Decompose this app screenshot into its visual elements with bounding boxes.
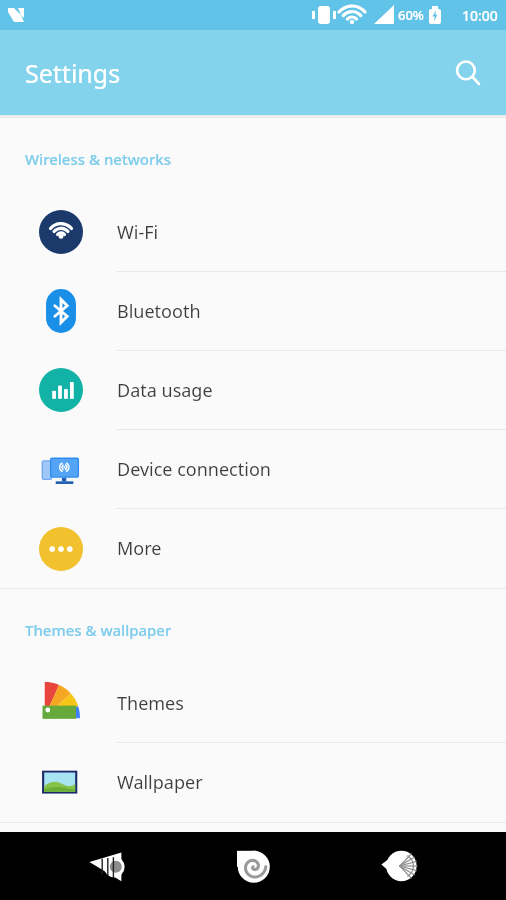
staticText: Themes	[117, 691, 184, 716]
staticText: Device connection	[117, 457, 271, 482]
button[interactable]: Device connection	[0, 430, 506, 509]
staticText: Wireless & networks	[25, 149, 171, 169]
button[interactable]: Bluetooth	[0, 272, 506, 351]
button[interactable]: Recents	[360, 832, 438, 900]
button[interactable]: Wi-Fi	[0, 193, 506, 272]
button[interactable]: Home	[214, 832, 292, 900]
staticText: 10:00	[462, 6, 498, 25]
button[interactable]: Data usage	[0, 351, 506, 430]
button[interactable]: More	[0, 509, 506, 588]
button[interactable]: Search	[444, 49, 492, 97]
staticText: Bluetooth	[117, 299, 201, 324]
button[interactable]: Back	[68, 832, 146, 900]
staticText: Themes & wallpaper	[25, 620, 172, 640]
staticText: Data usage	[117, 378, 213, 403]
staticText: Wi-Fi	[117, 220, 159, 245]
staticText: Wallpaper	[117, 770, 203, 795]
button[interactable]: Wallpaper	[0, 743, 506, 822]
staticText: 60%	[398, 6, 424, 24]
staticText: Settings	[25, 56, 121, 90]
button[interactable]: Themes	[0, 664, 506, 743]
staticText: More	[117, 536, 162, 561]
